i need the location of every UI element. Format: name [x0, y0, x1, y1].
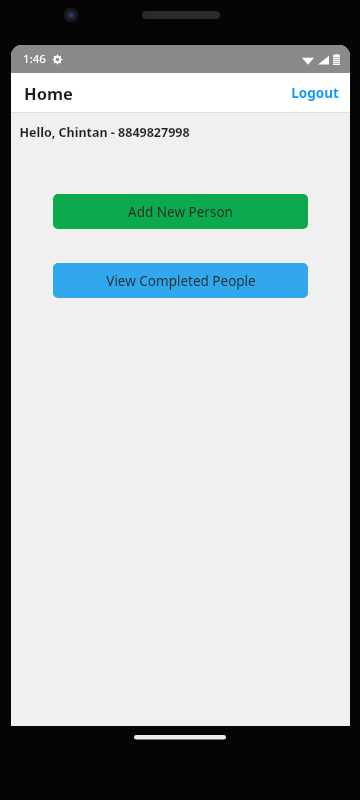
staticText: Logout — [291, 84, 339, 102]
button[interactable]: View Completed People — [53, 263, 308, 298]
button[interactable]: Logout — [281, 78, 350, 108]
staticText: Home — [24, 82, 73, 104]
staticText: View Completed People — [106, 272, 256, 290]
staticText: Add New Person — [128, 203, 233, 221]
staticText: 1:46 — [23, 51, 46, 67]
button[interactable]: Add New Person — [53, 194, 308, 229]
staticText: Hello, Chintan - 8849827998 — [19, 124, 190, 141]
button[interactable]: Home — [11, 78, 81, 108]
